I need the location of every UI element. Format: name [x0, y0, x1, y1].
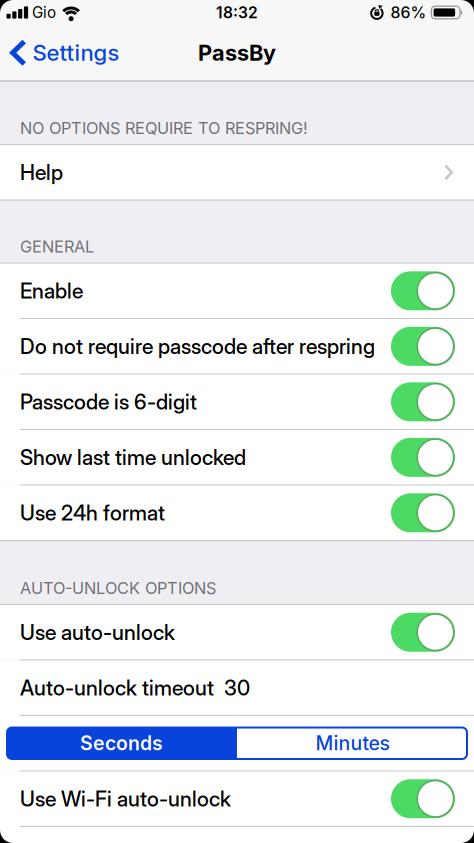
staticText: Use 24h format — [20, 500, 165, 525]
button[interactable]: Use Wi-Fi auto-unlock — [391, 779, 455, 818]
staticText: Show last time unlocked — [20, 445, 246, 470]
staticText: PassBy — [198, 40, 276, 66]
button[interactable]: Minutes — [237, 726, 468, 760]
button[interactable]: Do not require passcode after respring — [391, 327, 455, 366]
staticText: Minutes — [315, 731, 389, 755]
button[interactable]: Help — [0, 145, 474, 199]
button[interactable]: Passcode is 6-digit — [391, 382, 455, 421]
button[interactable]: Back to Settings — [0, 39, 119, 67]
button[interactable]: Use auto-unlock — [391, 613, 455, 652]
staticText: NO OPTIONS REQUIRE TO RESPRING! — [20, 118, 308, 138]
button[interactable]: Show last time unlocked — [391, 438, 455, 477]
button[interactable]: Auto-unlock timeout — [0, 661, 474, 715]
staticText: Use auto-unlock — [20, 619, 175, 645]
staticText: Seconds — [80, 731, 163, 755]
button[interactable]: Use 24h format — [391, 493, 455, 532]
staticText: 18:32 — [216, 3, 258, 22]
button[interactable]: Seconds — [6, 726, 237, 760]
staticText: AUTO-UNLOCK OPTIONS — [20, 578, 216, 598]
staticText: Enable — [20, 278, 83, 303]
staticText: Gio — [32, 3, 56, 22]
staticText: 86% — [390, 3, 426, 22]
staticText: Auto-unlock timeout — [20, 675, 214, 700]
staticText: GENERAL — [20, 237, 94, 256]
staticText: Do not require passcode after respring — [20, 334, 375, 359]
button[interactable]: Enable — [391, 271, 455, 310]
staticText: Use Wi-Fi auto-unlock — [20, 786, 231, 811]
staticText: 30 — [224, 675, 250, 700]
staticText: Passcode is 6-digit — [20, 389, 197, 414]
staticText: Settings — [32, 39, 119, 66]
staticText: Help — [20, 160, 63, 185]
